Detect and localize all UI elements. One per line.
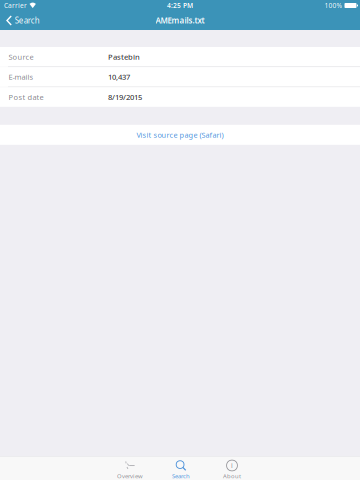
staticText: i (231, 461, 233, 470)
staticText: Source (8, 52, 33, 62)
staticText: 100% (324, 1, 342, 10)
staticText: Pastebin (108, 52, 140, 62)
staticText: About (223, 472, 241, 480)
staticText: Visit source page (Safari) (136, 130, 223, 140)
button[interactable]: Overview (107, 456, 153, 480)
staticText: AMEmails.txt (155, 15, 204, 26)
staticText: Search (15, 15, 40, 26)
staticText: 8/19/2015 (108, 92, 142, 102)
button[interactable]: Search (0, 11, 46, 30)
staticText: Search (172, 472, 190, 480)
staticText: Post date (8, 92, 43, 102)
staticText: 4:25 PM (167, 1, 193, 10)
staticText: 10,437 (108, 72, 130, 82)
button[interactable]: Visit source page (Safari) (0, 125, 360, 145)
button[interactable]: Search (158, 456, 204, 480)
staticText: Overview (117, 472, 143, 480)
staticText: Carrier (4, 1, 27, 10)
staticText: E-mails (8, 72, 33, 82)
button[interactable]: i (209, 456, 255, 480)
